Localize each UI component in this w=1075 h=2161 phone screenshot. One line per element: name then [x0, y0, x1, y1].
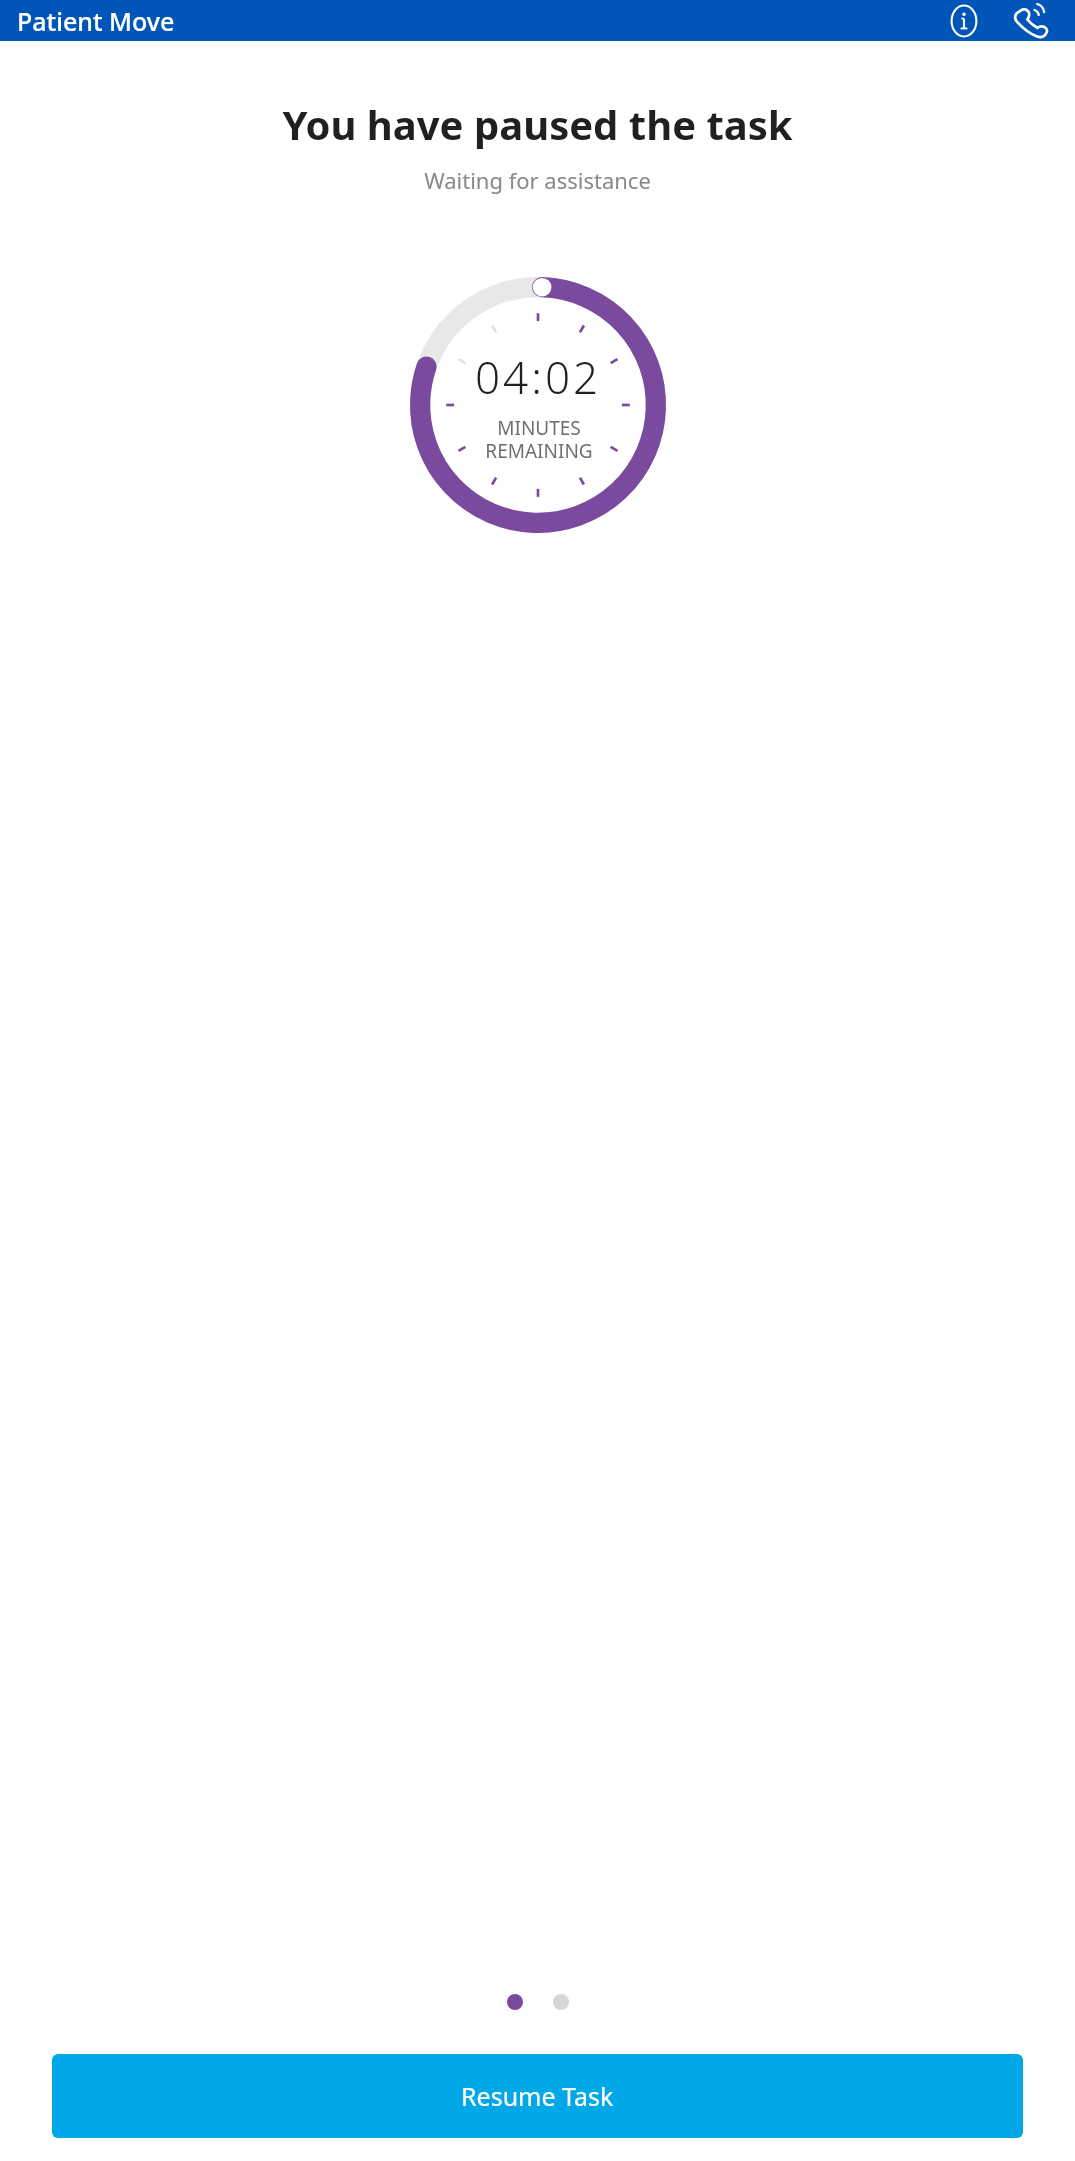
- staticText: 04:02: [475, 347, 602, 407]
- button[interactable]: Resume Task: [52, 2054, 1023, 2138]
- staticText: Patient Move: [17, 4, 175, 38]
- button[interactable]: Information: [941, 0, 987, 41]
- staticText: You have paused the task: [0, 97, 1075, 151]
- staticText: Waiting for assistance: [0, 165, 1075, 195]
- staticText: Resume Task: [461, 2079, 614, 2113]
- staticText: MINUTES REMAINING: [485, 415, 593, 464]
- button[interactable]: Call: [1009, 0, 1055, 41]
